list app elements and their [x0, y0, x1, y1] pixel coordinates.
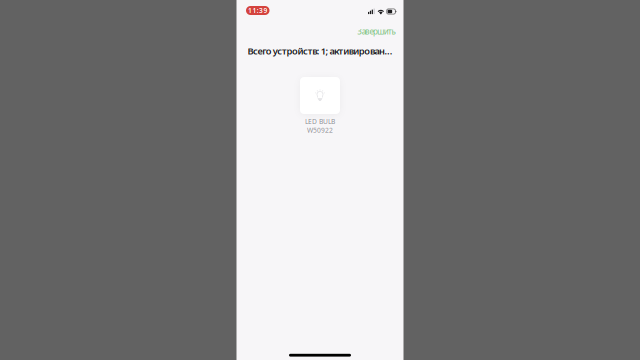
button[interactable]: Завершить [355, 24, 397, 39]
staticText: Завершить [357, 26, 395, 37]
staticText: W50922 [307, 126, 333, 135]
button[interactable]: LED BULB [292, 77, 348, 135]
staticText: Всего устройств: 1; активирован... [247, 45, 393, 57]
staticText: LED BULB [305, 117, 335, 126]
staticText: 11:39 [248, 6, 267, 15]
